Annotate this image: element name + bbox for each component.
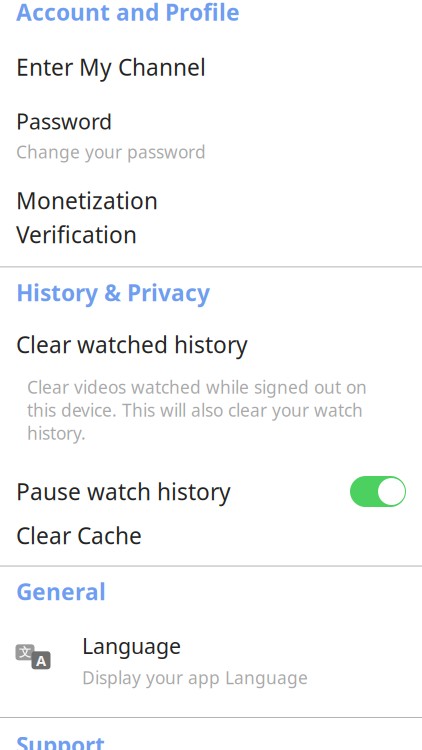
staticText: Enter My Channel bbox=[16, 52, 206, 82]
staticText: General bbox=[16, 576, 106, 607]
button[interactable]: Clear Cache bbox=[0, 520, 422, 550]
staticText: Verification bbox=[16, 219, 137, 249]
button[interactable]: Pause watch history bbox=[0, 474, 422, 508]
button[interactable]: Enter My Channel bbox=[0, 52, 422, 82]
staticText: Change your password bbox=[16, 140, 206, 163]
button[interactable]: 文 bbox=[0, 632, 422, 689]
staticText: Support bbox=[16, 730, 105, 750]
staticText: Display your app Language bbox=[82, 666, 308, 689]
staticText: 文 bbox=[19, 645, 31, 660]
staticText: Clear Cache bbox=[16, 520, 142, 551]
button[interactable]: Clear watched history bbox=[0, 329, 422, 359]
staticText: A bbox=[36, 651, 46, 670]
staticText: Password bbox=[16, 107, 112, 135]
staticText: Clear videos watched while signed out on… bbox=[27, 375, 367, 445]
staticText: Pause watch history bbox=[16, 476, 231, 507]
staticText: Language bbox=[82, 632, 181, 660]
button[interactable]: Password bbox=[0, 107, 422, 163]
staticText: Clear watched history bbox=[16, 329, 248, 359]
button[interactable]: Monetization bbox=[0, 185, 422, 215]
button[interactable]: Verification bbox=[0, 219, 422, 249]
staticText: History & Privacy bbox=[16, 277, 210, 307]
staticText: Monetization bbox=[16, 185, 158, 215]
staticText: Account and Profile bbox=[16, 0, 240, 27]
button[interactable]: Pause watch history bbox=[350, 476, 406, 507]
